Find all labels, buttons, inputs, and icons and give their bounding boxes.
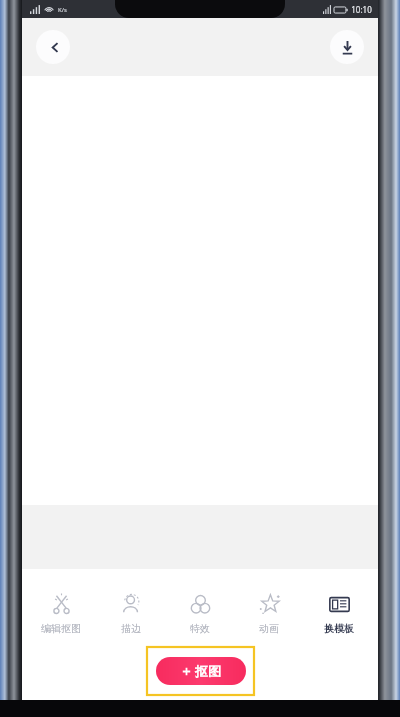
staticText: 动画 (259, 622, 279, 635)
button[interactable]: 描边 (101, 593, 161, 635)
button[interactable]: 编辑抠图 (31, 593, 91, 635)
staticText: 抠图 (195, 663, 221, 679)
staticText: K/s (58, 6, 67, 14)
button[interactable]: 特效 (170, 593, 230, 635)
staticText: 编辑抠图 (41, 622, 81, 635)
staticText: 10:10 (351, 4, 372, 15)
button[interactable]: Download (330, 30, 364, 64)
button[interactable]: Back (36, 30, 70, 64)
button[interactable]: 动画 (239, 593, 299, 635)
staticText: 换模板 (324, 622, 354, 635)
staticText: 描边 (121, 622, 141, 635)
button[interactable]: 换模板 (309, 593, 369, 635)
staticText: 特效 (190, 622, 210, 635)
button[interactable]: 抠图 (156, 657, 246, 685)
